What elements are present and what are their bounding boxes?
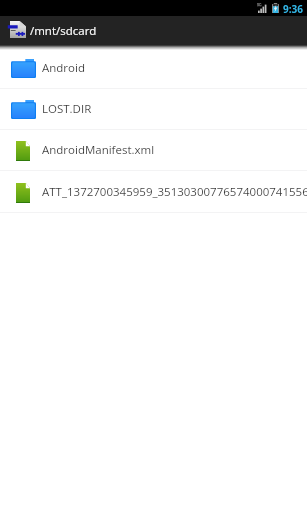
button[interactable]: AndroidManifest.xml: [0, 130, 307, 171]
button[interactable]: ATT_1372700345959_3513030077657400074155…: [0, 172, 307, 213]
staticText: 9:36: [283, 2, 304, 16]
button[interactable]: LOST.DIR: [0, 89, 307, 130]
button[interactable]: /mnt/sdcard: [0, 16, 307, 45]
staticText: ATT_1372700345959_3513030077657400074155…: [42, 184, 307, 200]
staticText: LOST.DIR: [42, 101, 92, 117]
staticText: Android: [42, 60, 85, 76]
staticText: /mnt/sdcard: [30, 23, 97, 39]
button[interactable]: Android: [0, 48, 307, 89]
staticText: AndroidManifest.xml: [42, 142, 155, 158]
